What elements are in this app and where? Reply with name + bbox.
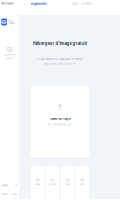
staticText: gratuitement, sans inscription. bbox=[44, 62, 76, 65]
button[interactable]: Mes images bbox=[0, 18, 19, 25]
button[interactable]: imghoster bbox=[30, 1, 46, 6]
button[interactable]: Sécurisé bbox=[46, 166, 59, 200]
staticText: Mes images bbox=[9, 20, 15, 24]
button[interactable]: Thème bbox=[0, 190, 19, 199]
staticText: Illimité bbox=[80, 183, 85, 186]
button[interactable]: Compte bbox=[81, 2, 91, 5]
button[interactable]: Illimité bbox=[76, 166, 89, 200]
staticText: Hébergeur d'image gratuit bbox=[32, 41, 87, 46]
staticText: ou cliquez pour parcourir bbox=[47, 123, 72, 126]
staticText: Accueil bbox=[1, 2, 13, 5]
button[interactable]: Aide bbox=[71, 2, 77, 5]
staticText: Glissez-déposez vos images pour les hébe… bbox=[37, 58, 83, 60]
staticText: Aide bbox=[71, 2, 77, 5]
staticText: Thème bbox=[2, 193, 8, 196]
staticText: envoyée bbox=[6, 58, 13, 60]
staticText: Gratuit bbox=[64, 183, 70, 186]
staticText: Langue bbox=[2, 184, 8, 187]
staticText: Aucune image bbox=[3, 54, 15, 56]
staticText: Compte bbox=[81, 2, 91, 5]
button[interactable]: Rapide bbox=[31, 166, 44, 200]
staticText: Sécurisé bbox=[49, 183, 56, 186]
staticText: imghoster bbox=[30, 1, 46, 6]
staticText: Rapide bbox=[35, 183, 40, 186]
button[interactable]: Langue bbox=[0, 181, 19, 190]
staticText: Déposez vos images bbox=[49, 117, 70, 120]
staticText: Clair bbox=[12, 193, 17, 196]
staticText: FR bbox=[15, 184, 17, 187]
button[interactable]: Gratuit bbox=[61, 166, 74, 200]
button[interactable]: Accueil bbox=[1, 2, 13, 5]
button[interactable]: Déposez vos images bbox=[31, 86, 89, 157]
